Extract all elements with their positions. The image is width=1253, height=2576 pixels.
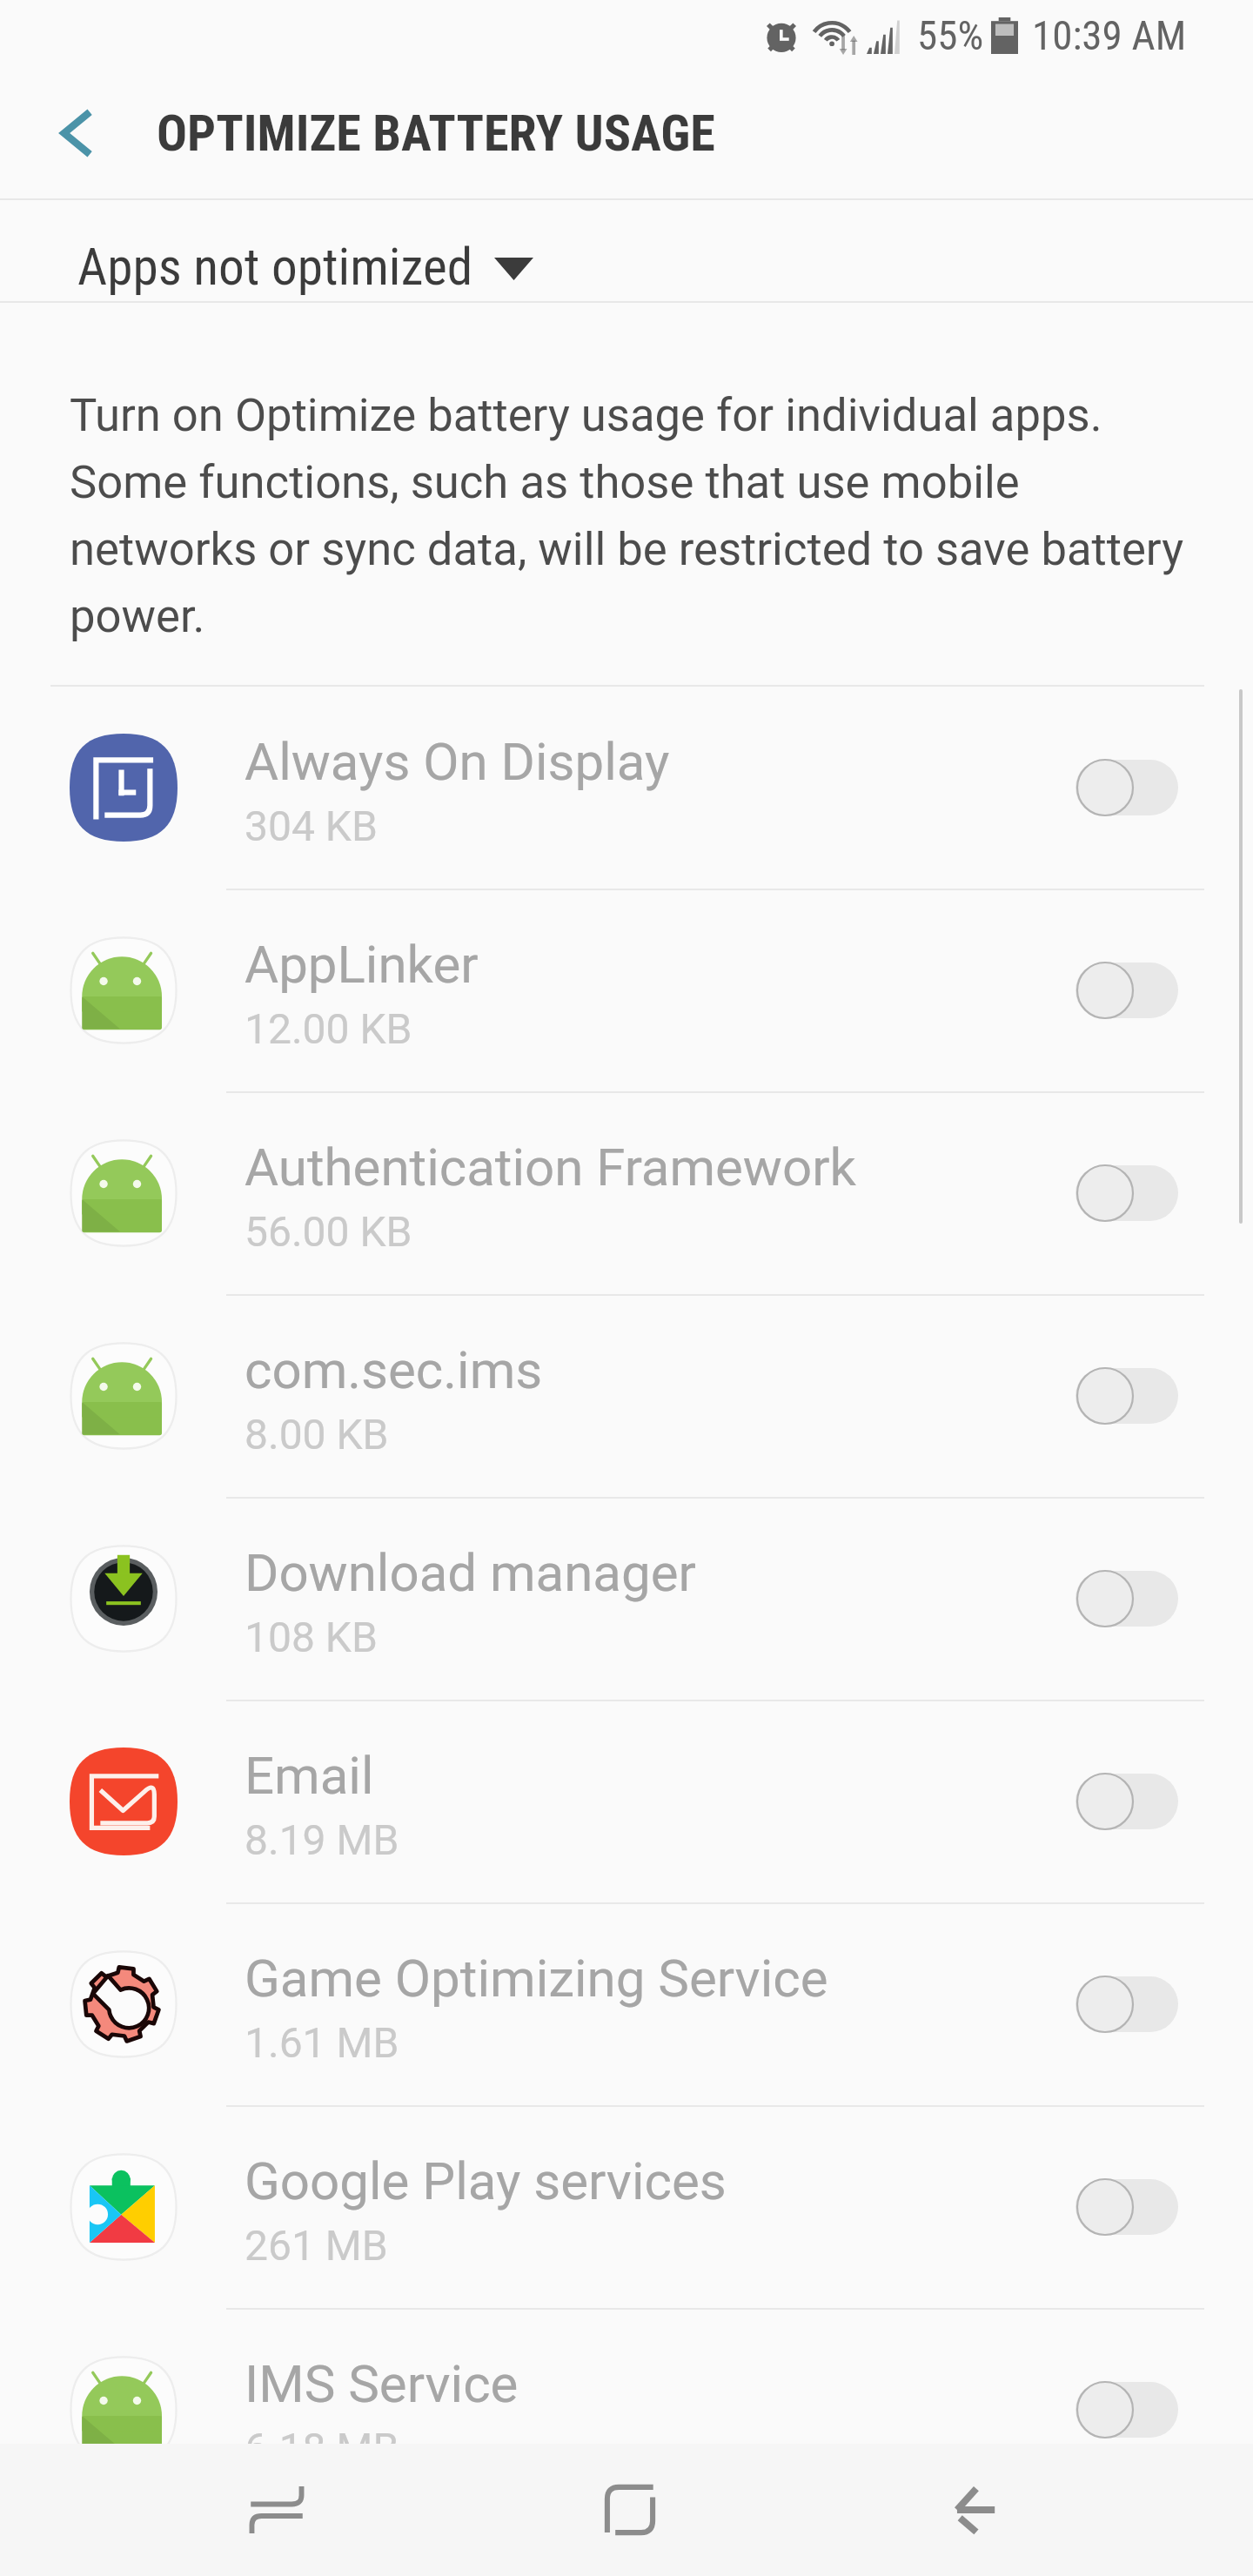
- staticText: Game Optimizing Service: [245, 1948, 828, 2009]
- button[interactable]: Back: [905, 2444, 1044, 2576]
- staticText: Download manager: [245, 1542, 696, 1603]
- staticText: Turn on Optimize battery usage for indiv…: [70, 388, 1205, 643]
- button[interactable]: IMS Service: [0, 2308, 1253, 2511]
- staticText: Apps not optimized: [77, 237, 473, 297]
- button[interactable]: Google Play services: [0, 2105, 1253, 2308]
- staticText: 8.00 KB: [245, 1410, 389, 1459]
- button[interactable]: com.sec.ims: [0, 1294, 1253, 1497]
- button[interactable]: Authentication Framework: [0, 1091, 1253, 1294]
- staticText: Email: [245, 1745, 374, 1806]
- staticText: AppLinker: [245, 934, 479, 995]
- staticText: 56.00 KB: [245, 1207, 412, 1256]
- button[interactable]: AppLinker: [0, 889, 1253, 1091]
- staticText: Always On Display: [245, 731, 670, 792]
- button[interactable]: Download manager: [0, 1497, 1253, 1700]
- staticText: Authentication Framework: [245, 1137, 856, 1197]
- staticText: 304 KB: [245, 802, 378, 850]
- button[interactable]: Always On Display: [0, 686, 1253, 889]
- staticText: IMS Service: [245, 2353, 519, 2414]
- button[interactable]: Apps not optimized: [0, 200, 1253, 301]
- button[interactable]: Navigate up: [35, 91, 118, 175]
- button[interactable]: Game Optimizing Service: [0, 1902, 1253, 2105]
- staticText: Google Play services: [245, 2150, 727, 2211]
- staticText: 1.61 MB: [245, 2018, 399, 2067]
- button[interactable]: Home: [560, 2444, 700, 2576]
- staticText: 108 KB: [245, 1613, 378, 1661]
- staticText: 55%: [917, 11, 984, 59]
- staticText: OPTIMIZE BATTERY USAGE: [157, 104, 715, 163]
- staticText: com.sec.ims: [245, 1339, 543, 1400]
- staticText: 10:39 AM: [1032, 11, 1187, 59]
- staticText: 6.18 MB: [245, 2424, 399, 2472]
- staticText: 8.19 MB: [245, 1815, 399, 1864]
- staticText: 261 MB: [245, 2221, 388, 2270]
- button[interactable]: Recent apps: [207, 2444, 346, 2576]
- button[interactable]: Email: [0, 1700, 1253, 1902]
- staticText: 12.00 KB: [245, 1004, 412, 1053]
